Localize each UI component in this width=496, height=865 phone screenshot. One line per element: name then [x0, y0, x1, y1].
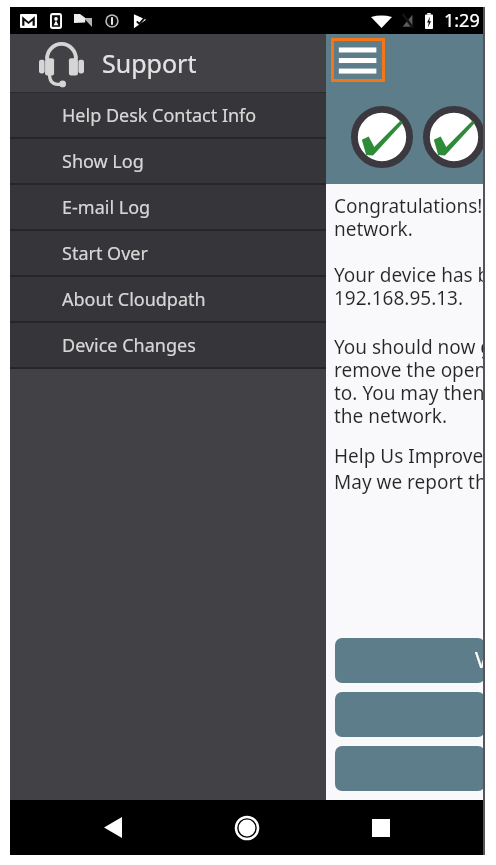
button[interactable]: About Cloudpath: [10, 277, 326, 321]
button[interactable]: Recent apps: [354, 800, 408, 855]
staticText: Help Us Improve! May we report that this…: [334, 443, 485, 494]
button[interactable]: E-mail Log: [10, 185, 326, 229]
staticText: About Cloudpath: [62, 287, 206, 312]
button[interactable]: Start Over: [10, 231, 326, 275]
staticText: Start Over: [62, 241, 148, 266]
button[interactable]: Back: [86, 800, 140, 855]
staticText: View Log: [475, 646, 485, 675]
staticText: Show Log: [62, 149, 144, 174]
staticText: 1:29: [444, 8, 480, 33]
button[interactable]: [335, 746, 485, 791]
staticText: Congratulations! You are now connected t…: [334, 193, 485, 311]
button[interactable]: [335, 692, 485, 737]
button[interactable]: Open navigation menu: [331, 38, 385, 82]
staticText: You should now go to your Wi-Fi settings…: [334, 334, 485, 429]
button[interactable]: Device Changes: [10, 323, 326, 367]
button[interactable]: View Log: [335, 638, 485, 683]
button[interactable]: Home: [220, 800, 274, 855]
button[interactable]: Show Log: [10, 139, 326, 183]
staticText: Help Desk Contact Info: [62, 103, 257, 128]
staticText: Device Changes: [62, 333, 196, 358]
staticText: E-mail Log: [62, 195, 151, 220]
button[interactable]: Help Desk Contact Info: [10, 93, 326, 137]
staticText: Support: [102, 46, 197, 80]
